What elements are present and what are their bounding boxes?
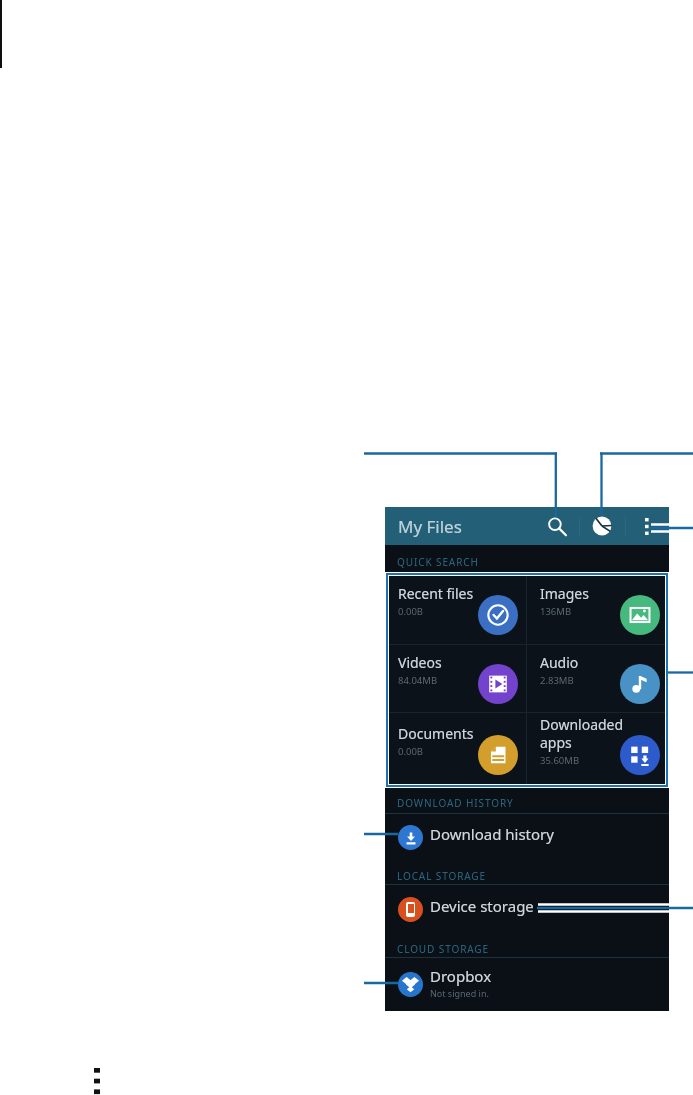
staticText: Dropbox	[430, 966, 492, 986]
staticText: 35.60MB	[540, 754, 580, 767]
button[interactable]: Downloaded apps	[527, 713, 669, 787]
staticText: 136MB	[540, 605, 572, 618]
staticText: 2.83MB	[540, 674, 574, 687]
staticText: Not signed in.	[430, 987, 489, 999]
staticText: Videos	[398, 653, 442, 672]
staticText: DOWNLOAD HISTORY	[397, 796, 514, 810]
button[interactable]: Images	[527, 575, 669, 644]
staticText: Download history	[430, 824, 554, 844]
staticText: Recent files	[398, 584, 474, 603]
staticText: Downloaded apps	[540, 715, 623, 752]
button[interactable]: Search	[542, 512, 570, 540]
button[interactable]: Dropbox	[385, 958, 669, 1011]
button[interactable]: Device storage	[385, 885, 669, 934]
staticText: Device storage	[430, 896, 534, 916]
staticText: CLOUD STORAGE	[397, 942, 489, 956]
staticText: 0.00B	[398, 745, 424, 758]
staticText: My Files	[398, 515, 462, 538]
staticText: QUICK SEARCH	[397, 555, 479, 569]
staticText: Images	[540, 584, 589, 603]
staticText: LOCAL STORAGE	[397, 869, 487, 883]
button[interactable]: Audio	[527, 645, 669, 712]
staticText: Audio	[540, 653, 579, 672]
staticText: 0.00B	[398, 605, 424, 618]
button[interactable]: Documents	[385, 713, 527, 787]
button[interactable]: More options	[633, 512, 661, 540]
button[interactable]: Videos	[385, 645, 527, 712]
staticText: Documents	[398, 724, 474, 743]
button[interactable]: Storage usage	[588, 512, 616, 540]
staticText: 84.04MB	[398, 674, 438, 687]
button[interactable]: Recent files	[385, 575, 527, 644]
button[interactable]: Download history	[385, 814, 669, 861]
